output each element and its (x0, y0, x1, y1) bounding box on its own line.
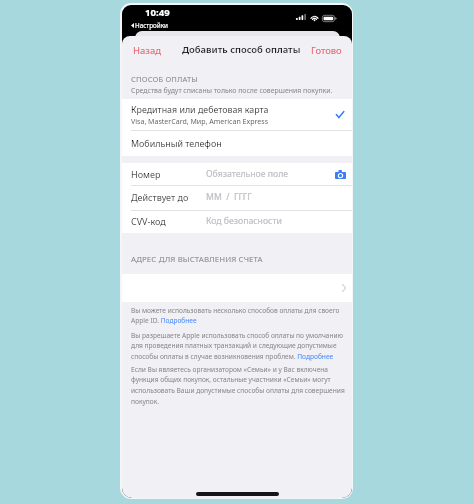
staticText: Назад (133, 44, 162, 57)
button[interactable]: Scan card (334, 168, 347, 181)
staticText: Номер (131, 168, 161, 180)
staticText: Настройки (135, 21, 168, 30)
staticText: Кредитная или дебетовая карта (131, 104, 269, 116)
staticText: Готово (311, 44, 342, 57)
staticText: Действует до (131, 191, 189, 203)
button[interactable] (122, 99, 352, 130)
button[interactable]: Номер (122, 163, 352, 186)
button[interactable]: Готово (306, 40, 347, 61)
button[interactable]: CVV-код (122, 210, 352, 233)
staticText: Обязательное поле (206, 168, 289, 180)
button[interactable]: Действует до (122, 186, 352, 209)
staticText: Вы можете использовать несколько способо… (131, 306, 347, 325)
staticText: АДРЕС ДЛЯ ВЫСТАВЛЕНИЯ СЧЕТА (131, 254, 263, 265)
staticText: CVV-код (131, 215, 166, 227)
staticText: СПОСОБ ОПЛАТЫ (131, 74, 198, 84)
staticText: 10:49 (145, 6, 170, 19)
button[interactable]: Назад (128, 40, 167, 61)
staticText: ММ / ГГГГ (206, 191, 252, 203)
other: Selected (336, 111, 344, 118)
staticText: Код безопасности (206, 215, 282, 227)
staticText: Visa, MasterCard, Мир, American Express (131, 116, 269, 126)
staticText: Если Вы являетесь организатором «Семьи» … (131, 365, 347, 406)
staticText: Добавить способ оплаты (182, 43, 301, 56)
staticText: Вы разрешаете Apple использовать способ … (131, 331, 347, 361)
button[interactable] (122, 130, 352, 156)
staticText: Средства будут списаны только после сове… (131, 86, 333, 95)
staticText: Мобильный телефон (131, 137, 222, 149)
